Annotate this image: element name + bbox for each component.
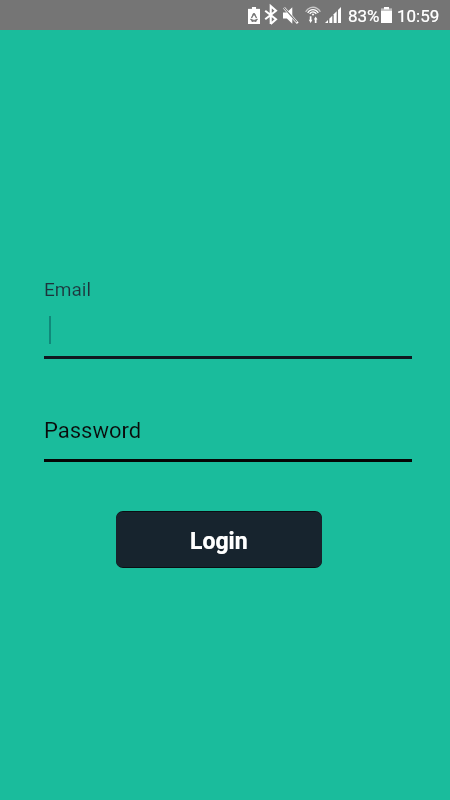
staticText: Password [44, 418, 142, 444]
staticText: 83% [348, 6, 380, 26]
staticText: 10:59 [397, 6, 440, 26]
button[interactable]: Password [44, 414, 412, 462]
button[interactable]: Login [116, 512, 322, 567]
staticText: Login [190, 528, 248, 555]
staticText: Email [44, 278, 92, 300]
button[interactable]: Email input field [44, 310, 412, 359]
